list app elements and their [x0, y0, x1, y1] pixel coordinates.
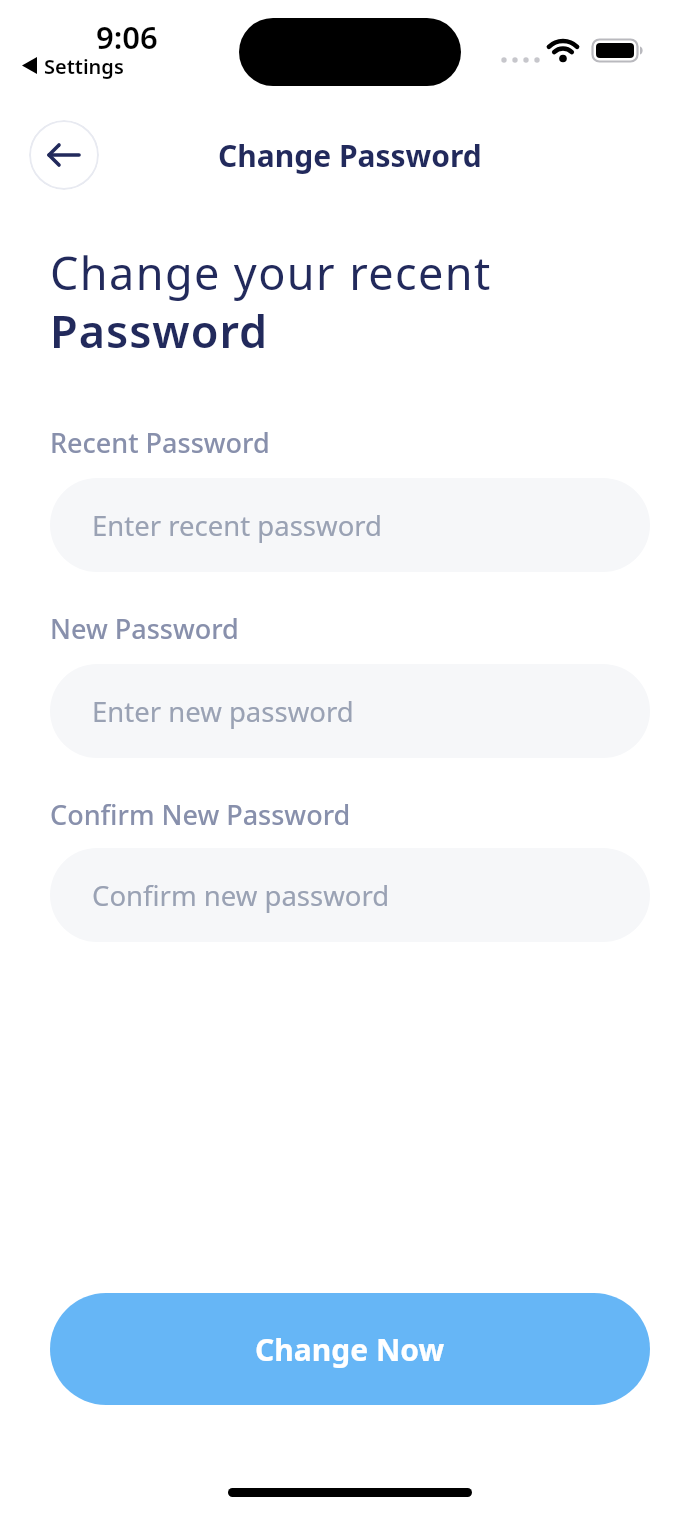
staticText: Password — [50, 300, 269, 361]
staticText: Change Password — [218, 135, 482, 176]
staticText: Enter recent password — [92, 507, 382, 544]
staticText: Settings — [44, 53, 124, 80]
staticText: New Password — [50, 610, 239, 647]
staticText: Change Now — [255, 1329, 445, 1370]
button[interactable] — [29, 120, 99, 190]
button[interactable]: Enter recent password — [50, 478, 650, 572]
staticText: Confirm New Password — [50, 796, 351, 833]
staticText: Recent Password — [50, 424, 270, 461]
staticText: Enter new password — [92, 693, 354, 730]
button[interactable]: Change Now — [50, 1293, 650, 1405]
staticText: Change your recent — [50, 242, 492, 303]
staticText: 9:06 — [96, 16, 158, 56]
staticText: Confirm new password — [92, 877, 390, 914]
button[interactable]: Enter new password — [50, 664, 650, 758]
button[interactable]: Confirm new password — [50, 848, 650, 942]
